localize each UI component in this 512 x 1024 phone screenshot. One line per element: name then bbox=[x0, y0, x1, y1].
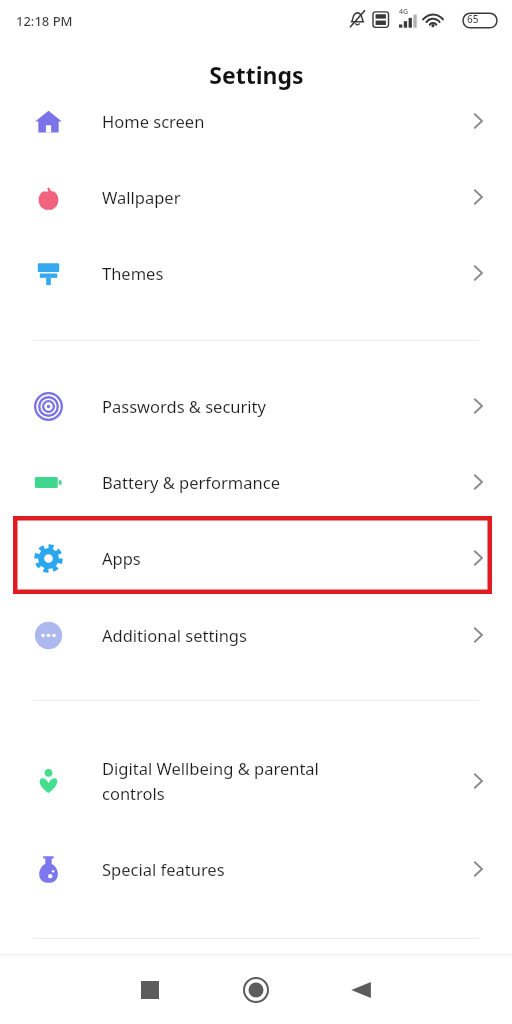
button[interactable]: Home bbox=[232, 966, 280, 1014]
button[interactable]: Back bbox=[337, 966, 385, 1014]
button[interactable]: Additional settings bbox=[0, 597, 512, 673]
button[interactable]: Special features bbox=[0, 831, 512, 907]
button[interactable]: Digital Wellbeing & parental controls bbox=[0, 743, 512, 819]
button[interactable]: Home screen bbox=[0, 83, 512, 159]
staticText: Home screen bbox=[102, 110, 468, 132]
staticText: Passwords & security bbox=[102, 395, 468, 417]
staticText: 12:18 PM bbox=[16, 12, 73, 30]
staticText: Additional settings bbox=[102, 624, 468, 646]
staticText: Battery & performance bbox=[102, 471, 468, 493]
button[interactable]: Wallpaper bbox=[0, 159, 512, 235]
staticText: Special features bbox=[102, 858, 468, 880]
staticText: Wallpaper bbox=[102, 186, 468, 208]
staticText: 4G bbox=[399, 7, 409, 17]
staticText: Apps bbox=[102, 547, 468, 569]
button[interactable]: Apps bbox=[0, 520, 512, 596]
staticText: Settings bbox=[209, 59, 304, 90]
button[interactable]: Passwords & security bbox=[0, 368, 512, 444]
button[interactable]: Recent apps bbox=[126, 966, 174, 1014]
staticText: 65 bbox=[467, 12, 479, 26]
staticText: Themes bbox=[102, 262, 468, 284]
button[interactable]: Themes bbox=[0, 235, 512, 311]
button[interactable]: Battery & performance bbox=[0, 444, 512, 520]
staticText: Digital Wellbeing & parental controls bbox=[102, 757, 468, 805]
